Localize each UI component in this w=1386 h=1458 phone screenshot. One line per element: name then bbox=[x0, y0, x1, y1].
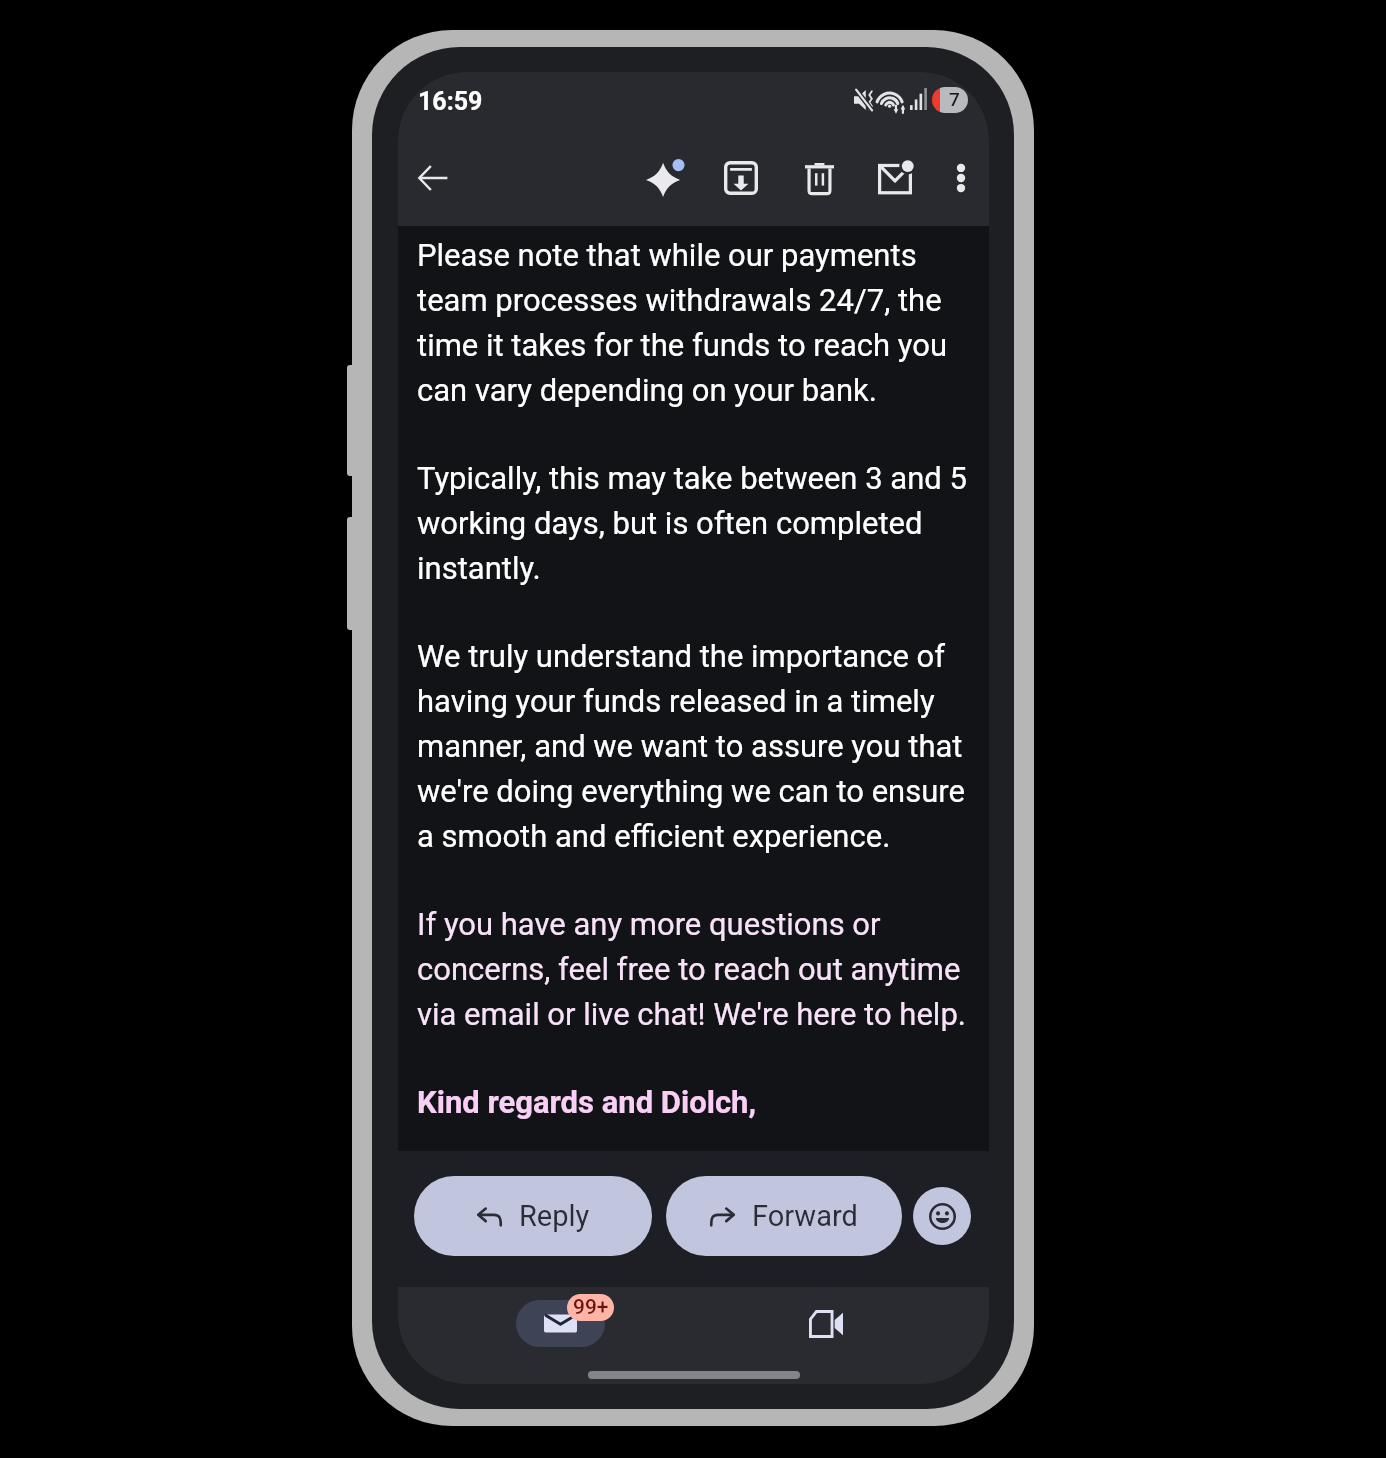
button[interactable]: Meet bbox=[781, 1300, 871, 1348]
staticText: 99+ bbox=[573, 1295, 609, 1320]
button[interactable]: Back bbox=[406, 151, 460, 205]
staticText: Forward bbox=[752, 1199, 858, 1233]
button[interactable]: Mark as unread bbox=[868, 151, 922, 205]
staticText: 16:59 bbox=[418, 87, 483, 116]
staticText: We truly understand the importance of ha… bbox=[417, 638, 967, 854]
staticText: Please note that while our payments team… bbox=[417, 237, 967, 408]
staticText: Typically, this may take between 3 and 5… bbox=[417, 460, 967, 586]
button[interactable]: Delete bbox=[792, 151, 846, 205]
staticText: Kind regards and Diolch, bbox=[417, 1084, 757, 1120]
staticText: Reply bbox=[519, 1199, 590, 1233]
button[interactable]: Archive bbox=[714, 151, 768, 205]
staticText: 7 bbox=[949, 88, 960, 110]
button[interactable]: More options bbox=[934, 151, 988, 205]
button[interactable]: Mail bbox=[516, 1300, 605, 1347]
button[interactable]: Add emoji reaction bbox=[913, 1187, 971, 1245]
button[interactable]: Summarize with AI bbox=[638, 151, 692, 205]
button[interactable]: Reply bbox=[414, 1176, 652, 1256]
button[interactable]: Forward bbox=[666, 1176, 902, 1256]
staticText: If you have any more questions or concer… bbox=[417, 906, 967, 1032]
